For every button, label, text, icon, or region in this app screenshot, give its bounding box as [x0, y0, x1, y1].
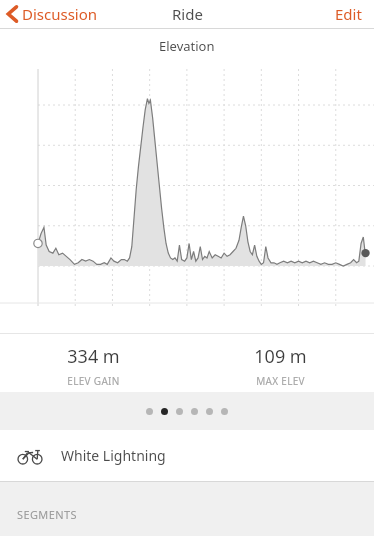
staticText: MAX ELEV: [256, 374, 305, 388]
button[interactable]: Page 6: [221, 408, 228, 415]
staticText: 334 m: [67, 344, 120, 369]
staticText: Ride: [172, 4, 203, 24]
button[interactable]: Edit: [323, 0, 374, 28]
button[interactable]: Page 3: [176, 408, 183, 415]
button[interactable]: Page 2: [161, 408, 168, 415]
staticText: 109 m: [254, 344, 307, 369]
button[interactable]: Page 5: [206, 408, 213, 415]
button[interactable]: Discussion: [0, 1, 106, 27]
staticText: Discussion: [22, 4, 98, 24]
staticText: SEGMENTS: [17, 507, 77, 522]
staticText: ELEV GAIN: [67, 374, 120, 388]
button[interactable]: Page 1: [146, 408, 153, 415]
button[interactable]: Page 4: [191, 408, 198, 415]
staticText: Edit: [335, 4, 362, 24]
staticText: Elevation: [159, 37, 215, 55]
staticText: White Lightning: [61, 446, 166, 465]
button[interactable]: White Lightning: [0, 430, 374, 481]
